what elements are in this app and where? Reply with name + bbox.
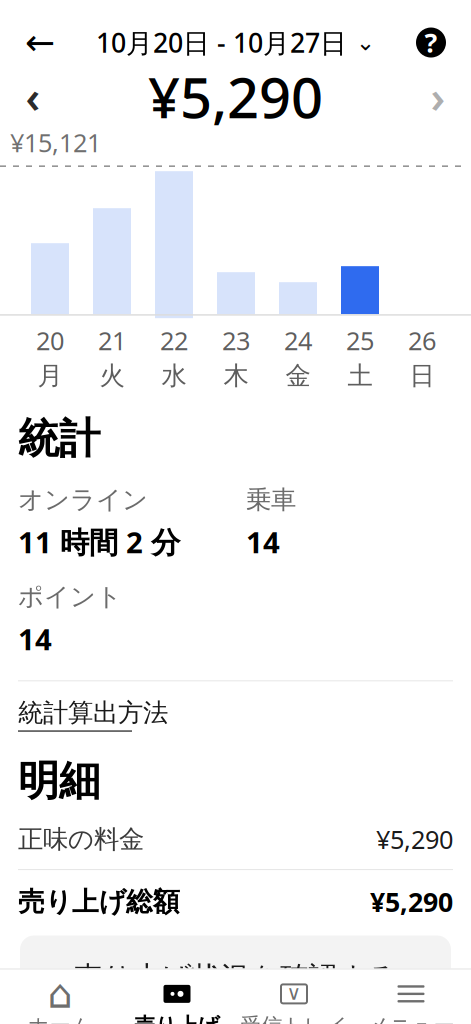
button[interactable]: 売り上げ状況を確認する	[20, 935, 451, 1005]
staticText: 22	[160, 324, 188, 357]
staticText: 木	[223, 360, 248, 391]
staticText: オンライン	[18, 484, 148, 515]
button[interactable]: 10月20日 - 10月27日	[88, 18, 383, 66]
staticText: 統計	[18, 413, 100, 464]
staticText: 日	[409, 360, 434, 391]
staticText: ∨	[286, 981, 301, 1004]
staticText: 26	[408, 324, 436, 357]
staticText: ホーム	[27, 1013, 92, 1024]
staticText: 土	[347, 360, 372, 391]
button[interactable]: ⌂	[1, 981, 118, 1024]
button[interactable]: 前の週	[10, 72, 56, 120]
staticText: 売り上げ	[134, 1013, 220, 1024]
staticText: 14	[246, 522, 280, 561]
staticText: ¥15,121	[10, 125, 101, 159]
staticText: ¥5,290	[376, 822, 453, 856]
staticText: 正味の料金	[18, 824, 144, 855]
button[interactable]: ヘルプ	[405, 18, 457, 66]
staticText: 受信トレイ	[240, 1013, 348, 1024]
staticText: 11 時間 2 分	[18, 522, 180, 561]
staticText: 売り上げ総額	[18, 885, 180, 918]
staticText: 金	[285, 360, 310, 391]
staticText: 統計算出方法	[18, 697, 168, 728]
staticText: 24	[284, 324, 312, 357]
staticText: 20	[36, 324, 64, 357]
staticText: 明細	[18, 756, 100, 806]
staticText: 10月20日 - 10月27日	[96, 25, 347, 60]
button[interactable]: 売り上げ	[118, 981, 235, 1024]
staticText: ¥5,290	[370, 884, 453, 919]
staticText: メニュー	[367, 1013, 454, 1024]
staticText: 23	[222, 324, 250, 357]
staticText: 火	[99, 360, 124, 391]
button[interactable]: ∨	[235, 981, 352, 1024]
button[interactable]: メニュー	[352, 981, 469, 1024]
button[interactable]: 戻る	[14, 18, 66, 66]
staticText: 14	[18, 619, 52, 658]
staticText: ‹	[25, 68, 40, 125]
staticText: 月	[37, 360, 62, 391]
staticText: 売り上げ状況を確認する	[73, 959, 397, 995]
staticText: 水	[161, 360, 186, 391]
staticText: ⌂	[47, 971, 72, 1017]
staticText: 25	[346, 324, 374, 357]
staticText: 21	[98, 324, 126, 357]
button[interactable]: 統計算出方法	[18, 681, 168, 732]
staticText: 乗車	[246, 484, 296, 515]
staticText: ←	[25, 22, 55, 63]
staticText: ポイント	[18, 581, 122, 612]
button[interactable]: 次の週	[415, 72, 461, 120]
staticText: ?	[424, 25, 437, 60]
staticText: ¥5,290	[148, 59, 323, 134]
staticText: ⌄	[356, 30, 375, 55]
staticText: ›	[430, 68, 445, 125]
